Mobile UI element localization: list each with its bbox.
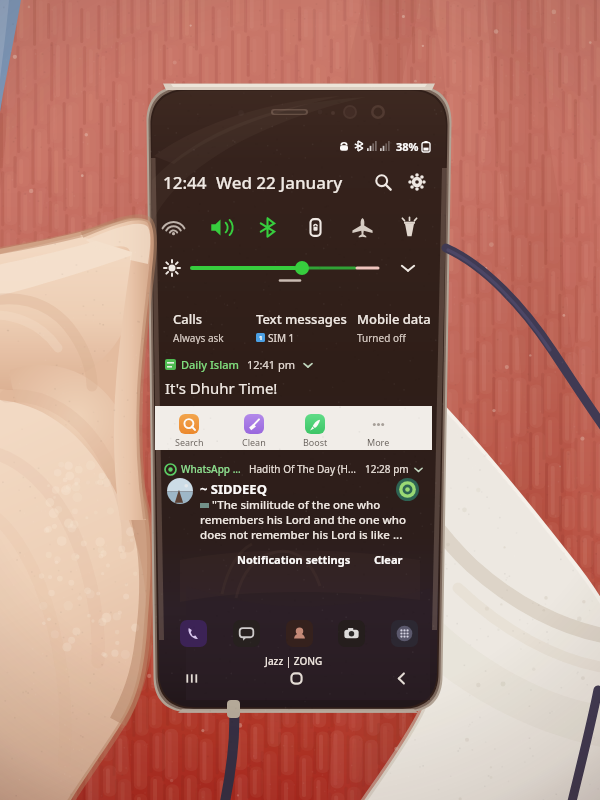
staticText: Clean: [242, 436, 266, 448]
button[interactable]: Text messages: [256, 310, 347, 344]
button[interactable]: Messages: [233, 620, 260, 647]
button[interactable]: Recents: [174, 662, 208, 694]
staticText: Daily Islam: [181, 357, 239, 372]
staticText: Text messages: [256, 310, 347, 328]
button[interactable]: Boost: [289, 406, 341, 450]
button[interactable]: Airplane mode: [345, 210, 379, 244]
button[interactable]: Rotate lock: [298, 210, 332, 244]
button[interactable]: Camera: [338, 620, 365, 647]
staticText: ~ SIDDEEQ: [200, 480, 267, 498]
staticText: SIM 1: [268, 331, 295, 344]
button[interactable]: Clear: [374, 552, 403, 567]
button[interactable]: Clean: [228, 406, 280, 450]
staticText: Turned off: [357, 331, 406, 344]
staticText: WhatsApp ...: [181, 462, 241, 476]
staticText: 12:28 pm: [365, 462, 409, 476]
button[interactable]: Apps: [391, 620, 418, 647]
button[interactable]: Brightness slider: [190, 259, 384, 277]
button[interactable]: Home: [279, 662, 313, 694]
staticText: 12:41 pm: [247, 357, 296, 372]
button[interactable]: Back: [384, 662, 418, 694]
staticText: Always ask: [173, 331, 224, 344]
button[interactable]: Contacts: [286, 620, 313, 647]
staticText: 1: [259, 334, 263, 342]
staticText: does not remember his Lord is like ...: [200, 527, 403, 543]
staticText: Notification settings: [237, 552, 351, 567]
button[interactable]: Mobile data: [357, 310, 431, 344]
button[interactable]: Expand: [398, 258, 418, 278]
button[interactable]: Search: [163, 406, 215, 450]
button[interactable]: WhatsApp ...: [152, 460, 436, 578]
staticText: It's Dhuhr Time!: [165, 378, 278, 398]
button[interactable]: Calls: [173, 310, 224, 344]
staticText: Mobile data: [357, 310, 431, 328]
button[interactable]: Settings: [405, 170, 429, 194]
button[interactable]: Bluetooth: [250, 210, 284, 244]
staticText: remembers his Lord and the one who: [200, 512, 407, 528]
button[interactable]: Wi-Fi: [156, 210, 190, 244]
staticText: Jazz | ZONG: [265, 654, 323, 668]
staticText: "The similitude of the one who: [212, 497, 381, 513]
button[interactable]: Brightness: [163, 259, 181, 277]
staticText: Search: [175, 436, 204, 448]
button[interactable]: More: [352, 406, 404, 450]
button[interactable]: Flashlight: [392, 210, 426, 244]
staticText: More: [367, 436, 390, 448]
staticText: 12:44: [163, 171, 207, 194]
staticText: Calls: [173, 310, 203, 328]
staticText: Hadith Of The Day (H...: [249, 462, 357, 476]
button[interactable]: Phone: [180, 620, 207, 647]
staticText: Clear: [374, 552, 403, 567]
staticText: Wed 22 January: [216, 171, 343, 194]
staticText: Boost: [303, 436, 328, 448]
button[interactable]: Notification settings: [237, 552, 351, 567]
button[interactable]: Search: [371, 170, 395, 194]
button[interactable]: Sound: [203, 210, 237, 244]
button[interactable]: Daily Islam: [165, 357, 428, 399]
staticText: 38%: [396, 139, 419, 154]
